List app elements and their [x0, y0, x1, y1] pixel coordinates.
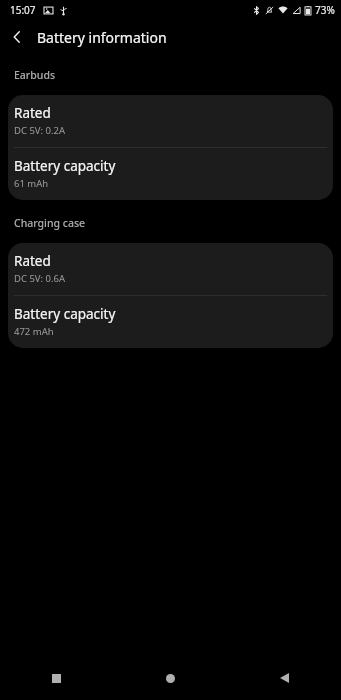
staticText: Rated: [14, 104, 51, 122]
button[interactable]: Battery capacity: [8, 148, 333, 200]
staticText: 73%: [315, 3, 335, 17]
staticText: 61 mAh: [14, 177, 49, 190]
staticText: Battery capacity: [14, 157, 116, 175]
button[interactable]: Recents: [0, 656, 113, 700]
button[interactable]: Home: [113, 656, 227, 700]
staticText: Rated: [14, 252, 51, 270]
staticText: DC 5V: 0.6A: [14, 272, 66, 285]
staticText: DC 5V: 0.2A: [14, 124, 66, 137]
button[interactable]: Back: [227, 656, 341, 700]
staticText: Earbuds: [14, 68, 56, 82]
button[interactable]: Back: [0, 20, 34, 54]
staticText: Battery capacity: [14, 305, 116, 323]
staticText: 15:07: [10, 3, 36, 17]
button[interactable]: Battery capacity: [8, 296, 333, 348]
button[interactable]: Rated: [8, 95, 333, 147]
staticText: 472 mAh: [14, 325, 54, 338]
button[interactable]: Rated: [8, 243, 333, 295]
staticText: Charging case: [14, 216, 86, 230]
staticText: Battery information: [37, 28, 167, 47]
